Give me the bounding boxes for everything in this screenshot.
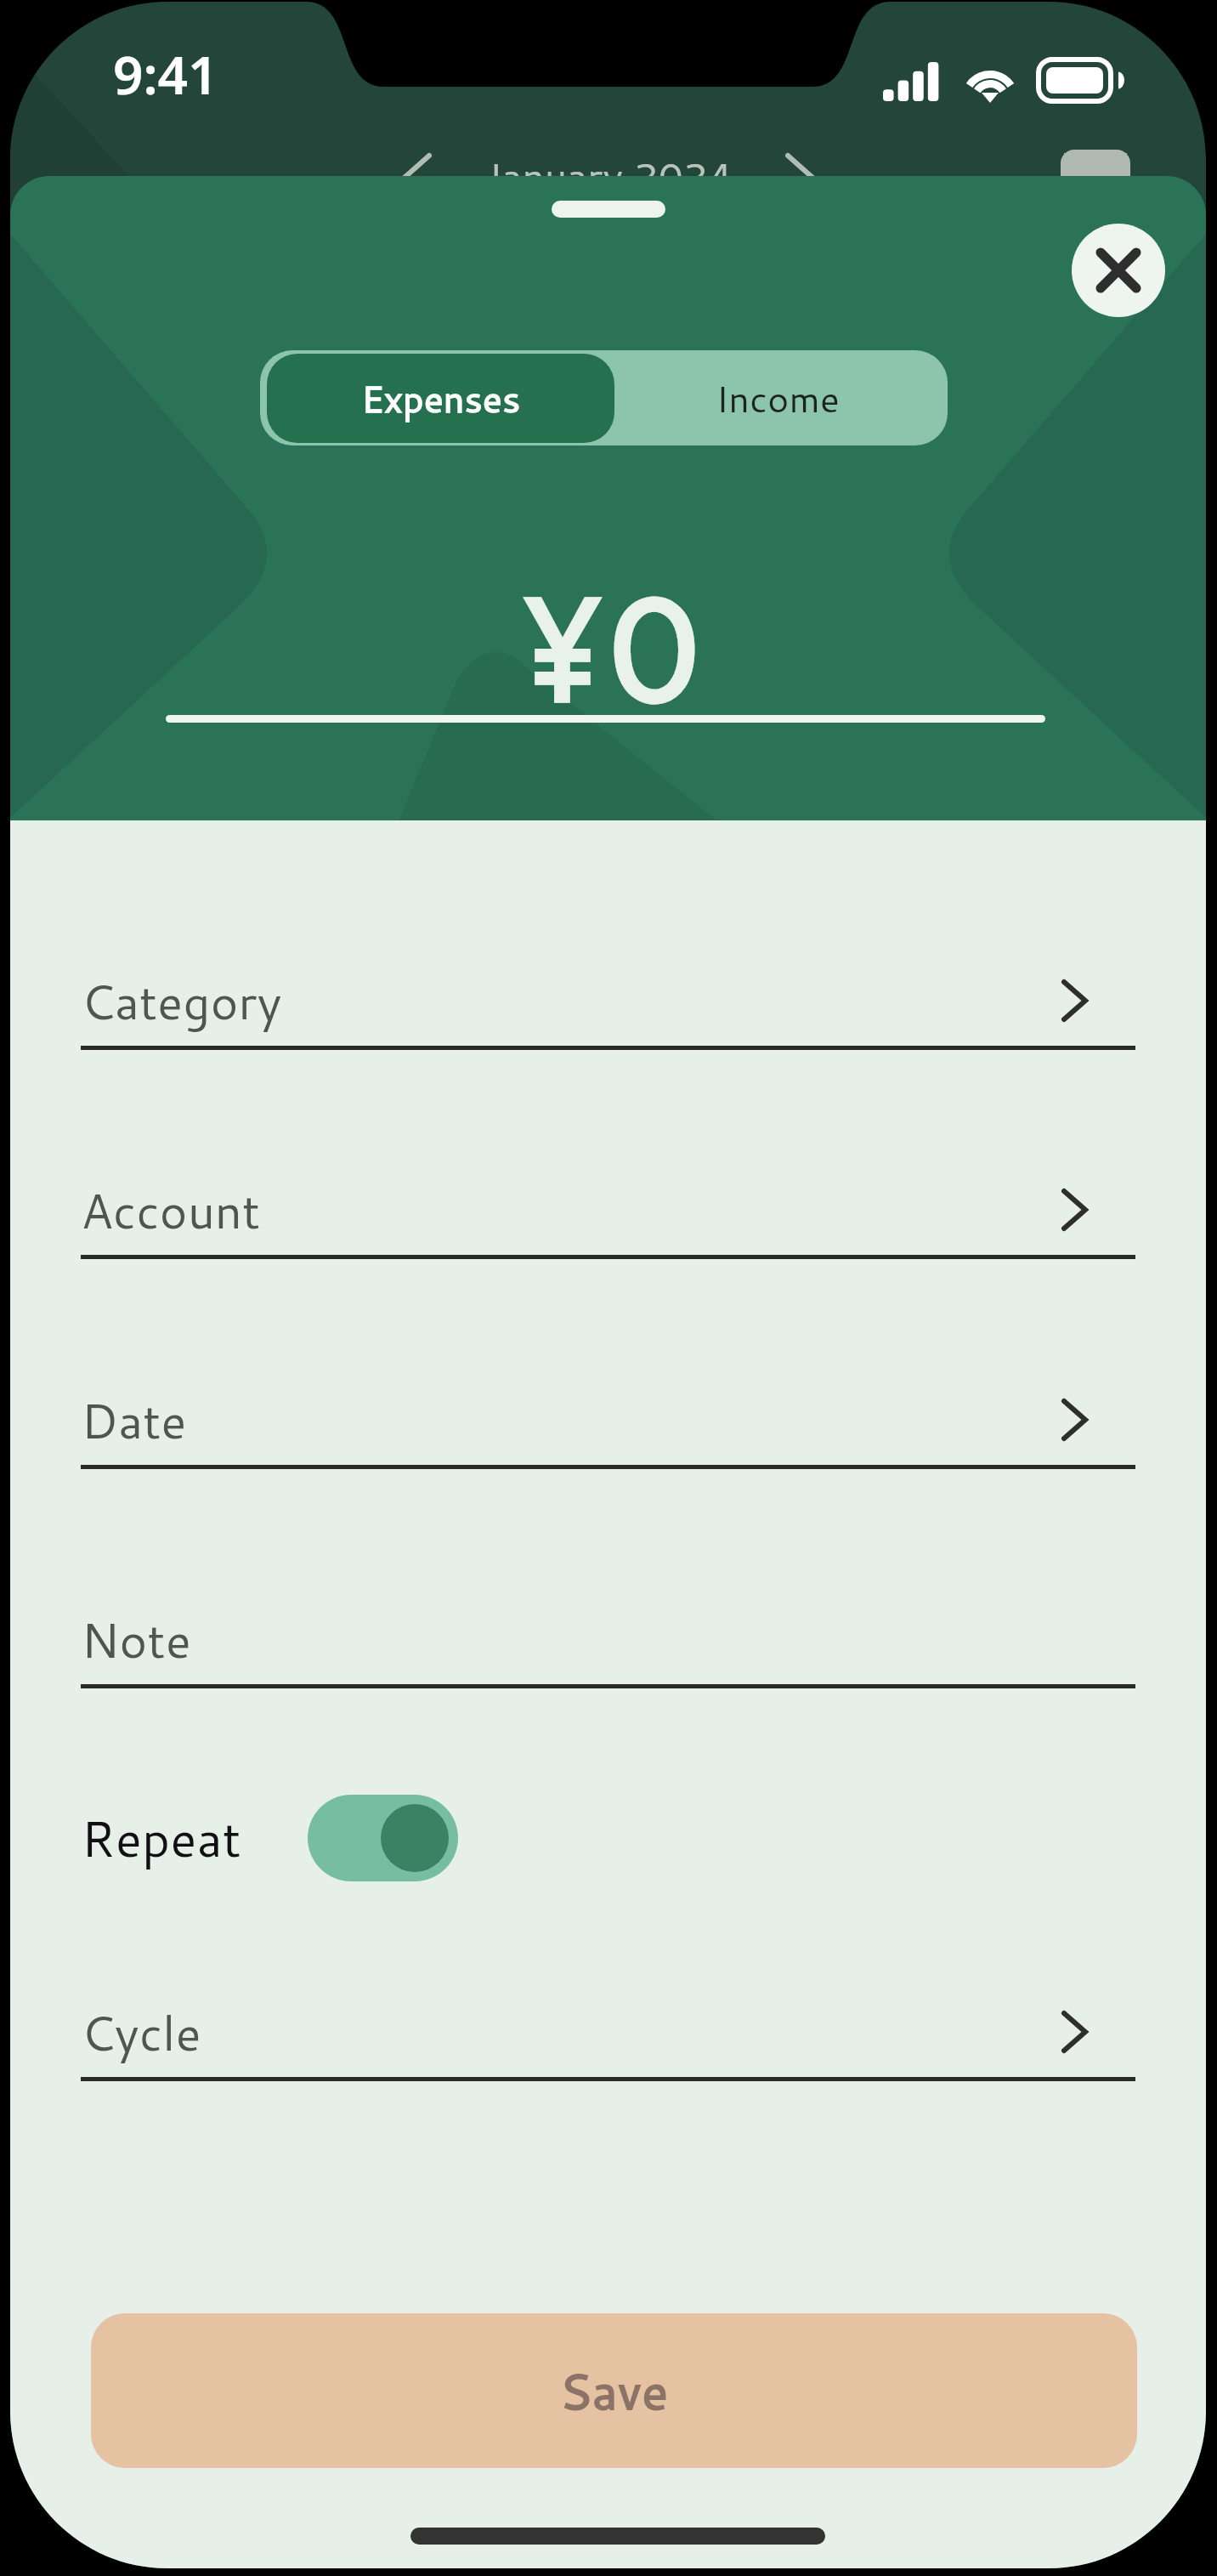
staticText: Account [81,1177,261,1244]
button[interactable]: Expenses [267,354,614,443]
staticText: Repeat [81,1803,241,1873]
button[interactable]: Account [81,1167,1135,1259]
staticText: 9:41 [113,38,218,110]
button[interactable]: Category [81,958,1135,1050]
staticText: ¥0 [517,542,700,747]
staticText: Save [559,2356,669,2426]
button[interactable]: Cycle [81,1989,1135,2081]
staticText: Cycle [81,1999,201,2066]
staticText: Note [81,1606,191,1673]
staticText: January 2024 [484,149,733,204]
button[interactable]: Note [81,1597,1135,1688]
staticText: Income [716,372,841,424]
staticText: Expenses [361,372,521,424]
button[interactable]: Save [91,2313,1137,2468]
button[interactable]: Close [1072,224,1165,317]
button[interactable]: Repeat [81,1795,458,1881]
staticText: Date [81,1387,187,1454]
button[interactable]: Date [81,1377,1135,1469]
button[interactable]: Income [608,350,948,445]
staticText: Category [81,967,282,1035]
